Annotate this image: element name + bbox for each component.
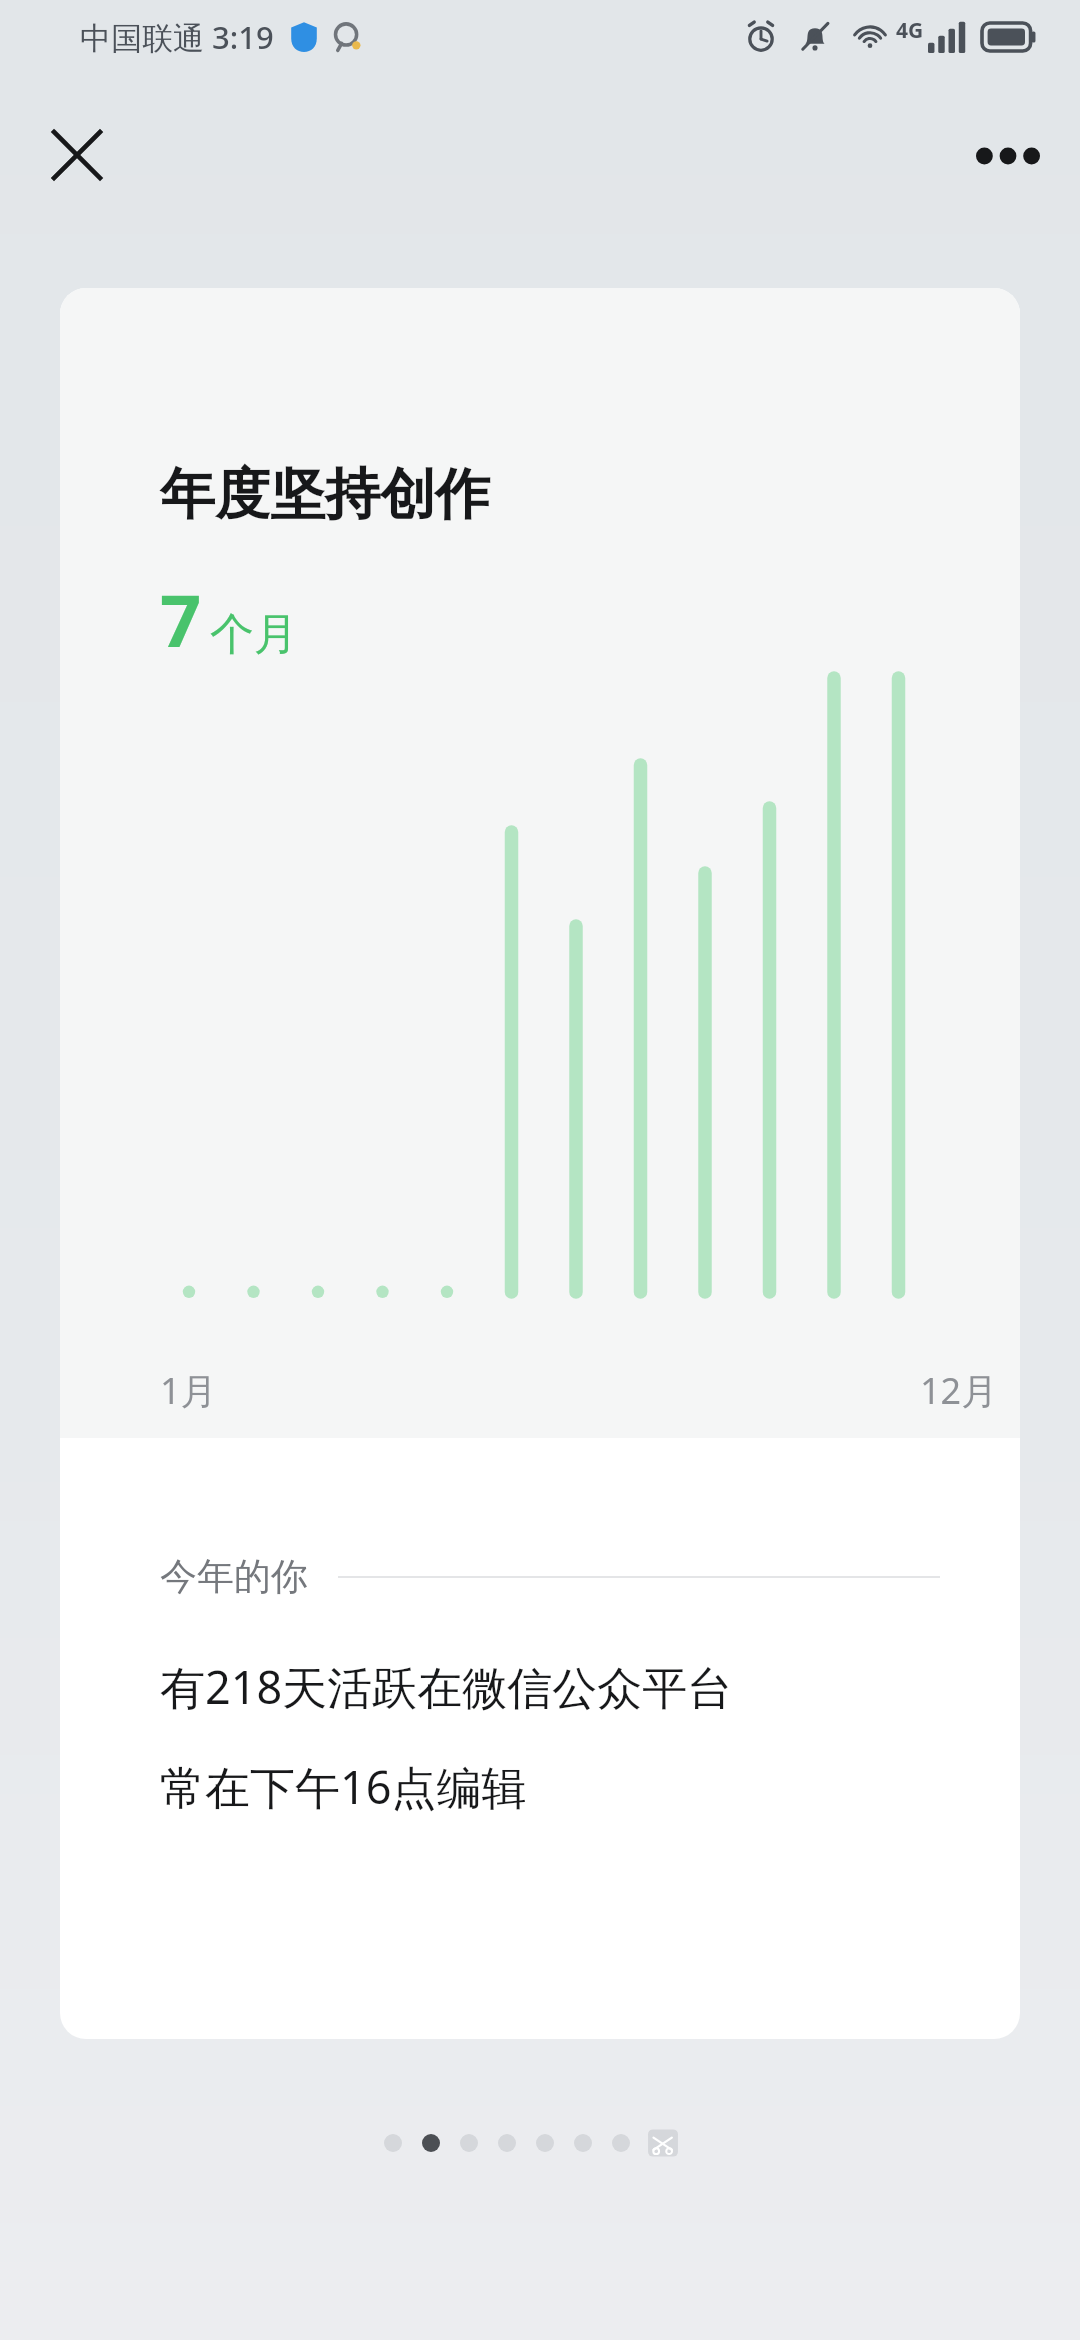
button[interactable]: Page 1 xyxy=(374,2124,412,2162)
button[interactable]: Page 4 xyxy=(488,2124,526,2162)
button[interactable]: Cut xyxy=(640,2120,686,2166)
button[interactable]: Page 2 xyxy=(412,2124,450,2162)
staticText: 常在下午16点编辑 xyxy=(160,1756,527,1817)
button[interactable]: Page 3 xyxy=(450,2124,488,2162)
staticText: 今年的你 xyxy=(160,1553,308,1600)
staticText: 12月 xyxy=(920,1366,998,1415)
button[interactable]: Close xyxy=(34,112,120,198)
button[interactable]: Page 6 xyxy=(564,2124,602,2162)
button[interactable]: 年度坚持创作 xyxy=(60,288,1020,2039)
staticText: 有218天活跃在微信公众平台 xyxy=(160,1656,733,1717)
button[interactable]: Page 7 xyxy=(602,2124,640,2162)
button[interactable]: More options xyxy=(960,108,1056,204)
staticText: 中国联通 3:19 xyxy=(80,16,274,58)
staticText: 7 xyxy=(160,570,202,668)
staticText: 4G xyxy=(896,16,924,45)
staticText: 年度坚持创作 xyxy=(160,460,490,529)
staticText: 个月 xyxy=(210,607,298,662)
staticText: 1月 xyxy=(160,1366,217,1415)
button[interactable]: Page 5 xyxy=(526,2124,564,2162)
